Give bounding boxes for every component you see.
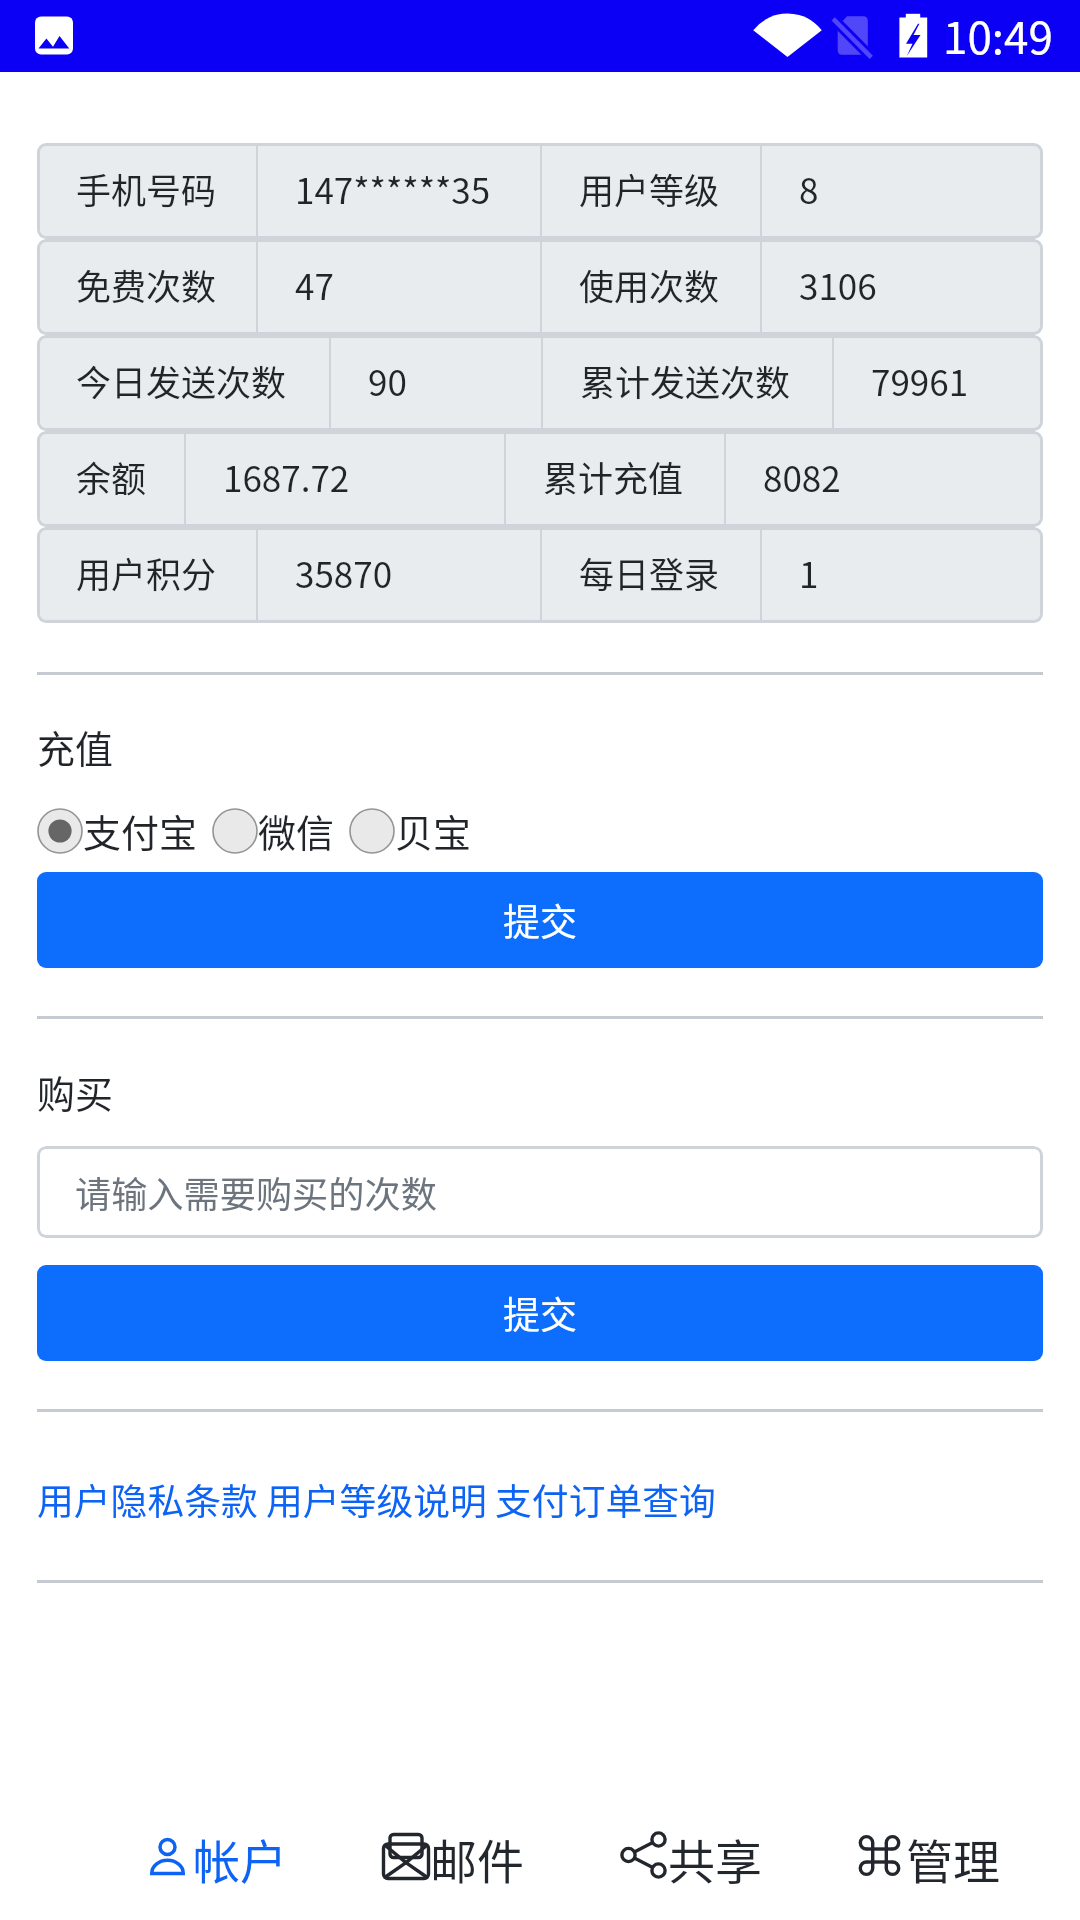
staticText: 8 [799, 163, 819, 214]
staticText: 今日发送次数 [76, 355, 287, 406]
staticText: 请输入需要购买的次数 [75, 1166, 437, 1218]
staticText: 累计充值 [543, 451, 684, 502]
button[interactable]: Screenshot [30, 12, 78, 60]
staticText: 47 [295, 259, 334, 310]
button[interactable]: 微信 [212, 803, 335, 858]
button[interactable]: 用户隐私条款 用户等级说明 支付订单查询 [37, 1472, 716, 1525]
staticText: 帐户 [193, 1824, 287, 1892]
staticText: 8082 [763, 451, 841, 502]
staticText: 免费次数 [76, 259, 217, 310]
staticText: 支付宝 [83, 803, 198, 858]
staticText: 1 [799, 547, 819, 598]
staticText: 贝宝 [395, 803, 472, 858]
staticText: 用户等级 [579, 163, 720, 214]
button[interactable]: 贝宝 [349, 803, 472, 858]
button[interactable]: 邮件 [334, 1796, 572, 1920]
button[interactable]: 提交 [37, 1265, 1043, 1361]
staticText: 用户隐私条款 用户等级说明 支付订单查询 [37, 1472, 716, 1525]
staticText: 使用次数 [579, 259, 720, 310]
button[interactable]: 请输入需要购买的次数 [37, 1146, 1043, 1238]
staticText: 充值 [37, 719, 114, 774]
staticText: 1687.72 [223, 451, 350, 502]
button[interactable]: 管理 [810, 1796, 1048, 1920]
staticText: 35870 [295, 547, 393, 598]
staticText: 购买 [37, 1064, 114, 1119]
staticText: 每日登录 [579, 547, 720, 598]
button[interactable]: 支付宝 [37, 803, 198, 858]
staticText: 147******35 [295, 163, 491, 214]
button[interactable]: 共享 [572, 1796, 810, 1920]
staticText: 79961 [871, 355, 969, 406]
staticText: 提交 [503, 1286, 577, 1340]
staticText: 累计发送次数 [580, 355, 791, 406]
staticText: 管理 [906, 1824, 1000, 1892]
staticText: 手机号码 [76, 163, 217, 214]
staticText: 10:49 [943, 3, 1053, 67]
staticText: 余额 [76, 451, 147, 502]
button[interactable]: 帐户 [97, 1796, 334, 1920]
staticText: 提交 [503, 893, 577, 947]
button[interactable]: 提交 [37, 872, 1043, 968]
staticText: 微信 [258, 803, 335, 858]
staticText: 共享 [668, 1824, 762, 1892]
staticText: 90 [368, 355, 407, 406]
staticText: 用户积分 [76, 547, 217, 598]
staticText: 邮件 [430, 1824, 524, 1892]
staticText: 3106 [799, 259, 877, 310]
